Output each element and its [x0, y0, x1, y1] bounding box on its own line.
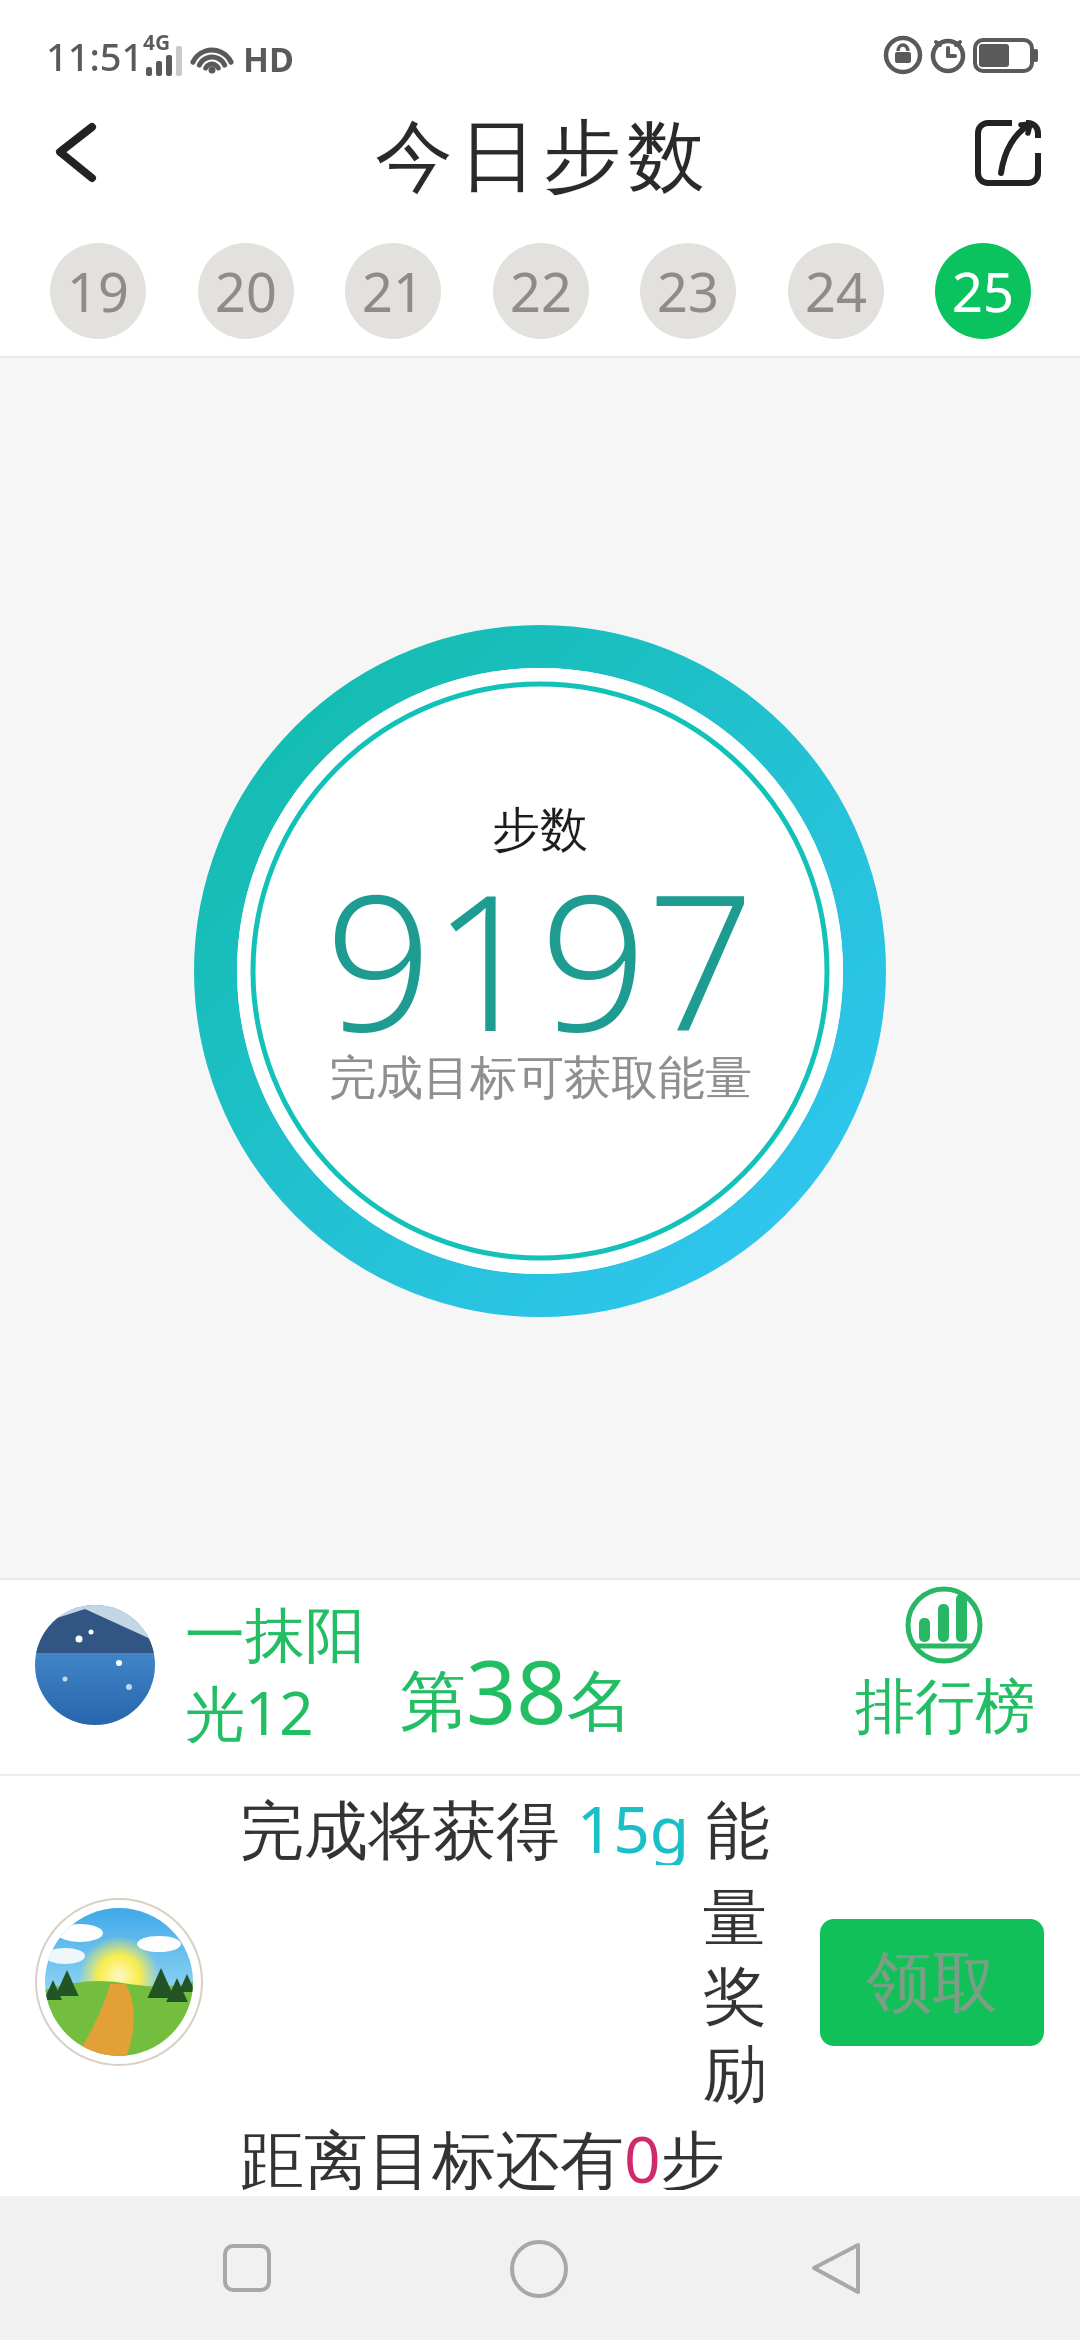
button[interactable]: 20 — [198, 243, 294, 339]
button[interactable] — [790, 2225, 885, 2320]
staticText: 步数 — [492, 800, 588, 860]
staticText: 完成目标可获取能量 — [329, 1049, 752, 1108]
staticText: 领取 — [866, 1941, 998, 2024]
button[interactable] — [35, 110, 135, 205]
staticText: 第38名 — [400, 1630, 633, 1750]
staticText: 23 — [657, 254, 719, 328]
button[interactable] — [200, 2225, 295, 2320]
button[interactable] — [955, 105, 1060, 200]
button[interactable]: 22 — [493, 243, 589, 339]
button[interactable]: 23 — [640, 243, 736, 339]
button[interactable]: 排行榜 — [840, 1585, 1050, 1745]
staticText: 9197 — [325, 830, 755, 1045]
staticText: 22 — [510, 254, 572, 328]
staticText: 励 — [703, 2034, 767, 2114]
staticText: 排行榜 — [855, 1669, 1035, 1745]
staticText: 4G — [143, 28, 171, 54]
staticText: 20 — [215, 254, 277, 328]
staticText: 19 — [67, 254, 129, 328]
staticText: 11:51 — [46, 30, 144, 80]
staticText: 25 — [952, 254, 1014, 328]
staticText: 24 — [805, 254, 867, 328]
staticText: 量 — [703, 1878, 767, 1958]
button[interactable]: 21 — [345, 243, 441, 339]
staticText: 奖 — [703, 1956, 767, 2036]
staticText: 距离目标还有0步 — [240, 2115, 725, 2190]
staticText: 一抹阳光12 — [185, 1598, 390, 1753]
button[interactable] — [492, 2225, 587, 2320]
staticText: 完成将获得 15g 能 — [240, 1785, 770, 1865]
button[interactable]: 25 — [935, 243, 1031, 339]
staticText: HD — [243, 36, 294, 80]
staticText: 21 — [362, 254, 424, 328]
button[interactable]: 19 — [50, 243, 146, 339]
button[interactable]: 24 — [788, 243, 884, 339]
staticText: 今日步数 — [372, 108, 708, 203]
button[interactable]: 领取 — [820, 1919, 1044, 2046]
